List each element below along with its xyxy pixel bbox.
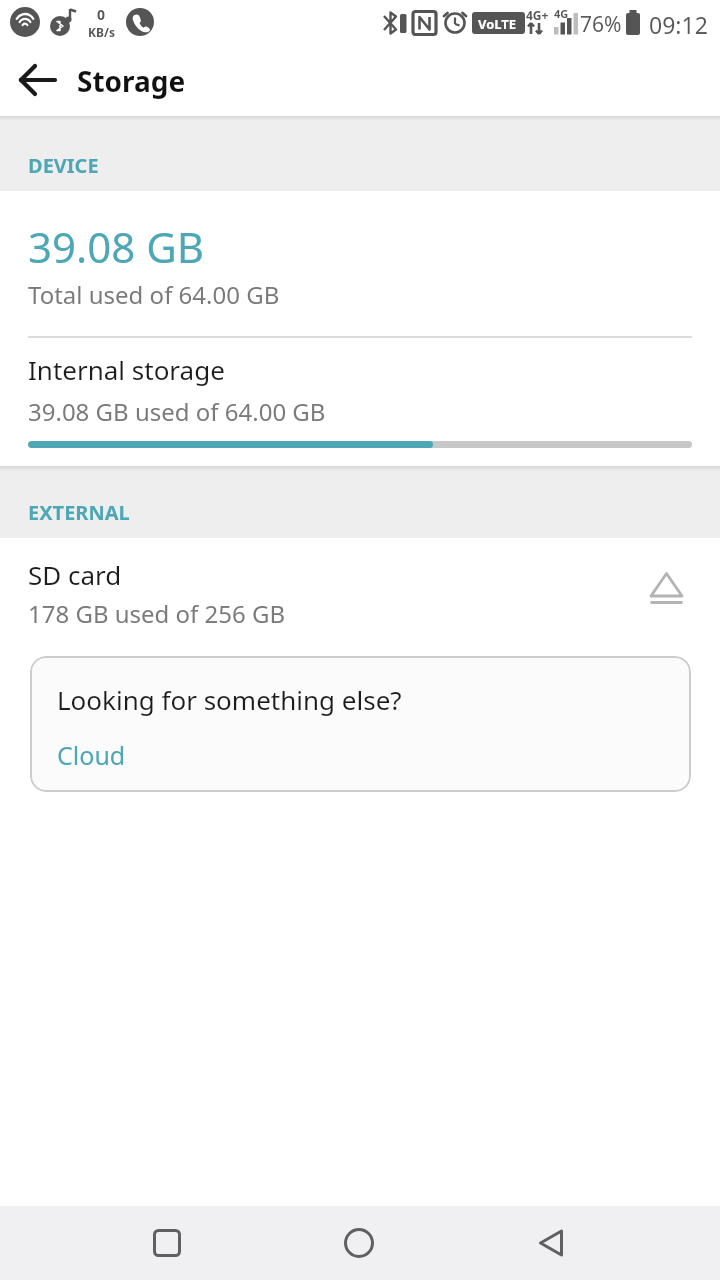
staticText: DEVICE bbox=[28, 152, 99, 179]
button[interactable]: Cloud bbox=[57, 738, 126, 772]
button[interactable]: Internal storage bbox=[0, 341, 720, 466]
staticText: KB/s bbox=[88, 24, 115, 40]
button[interactable] bbox=[119, 1206, 215, 1280]
button[interactable] bbox=[645, 567, 689, 611]
button[interactable] bbox=[311, 1206, 407, 1280]
staticText: 39.08 GB used of 64.00 GB bbox=[28, 395, 326, 428]
staticText: 4G bbox=[554, 6, 569, 21]
staticText: Internal storage bbox=[28, 352, 225, 387]
button[interactable]: Looking for something else? bbox=[30, 656, 691, 792]
staticText: 09:12 bbox=[649, 9, 708, 40]
staticText: EXTERNAL bbox=[28, 499, 130, 526]
staticText: SD card bbox=[28, 557, 122, 592]
staticText: VoLTE bbox=[478, 15, 517, 33]
staticText: Looking for something else? bbox=[57, 682, 402, 717]
staticText: 4G+ bbox=[526, 7, 549, 23]
button[interactable] bbox=[14, 57, 62, 105]
staticText: 0 bbox=[97, 5, 106, 24]
staticText: 39.08 GB bbox=[28, 218, 205, 275]
button[interactable] bbox=[503, 1206, 599, 1280]
button[interactable]: SD card bbox=[0, 538, 720, 656]
staticText: 76% bbox=[580, 10, 622, 39]
staticText: Total used of 64.00 GB bbox=[28, 278, 280, 311]
staticText: Storage bbox=[77, 62, 186, 100]
staticText: 178 GB used of 256 GB bbox=[28, 597, 286, 630]
